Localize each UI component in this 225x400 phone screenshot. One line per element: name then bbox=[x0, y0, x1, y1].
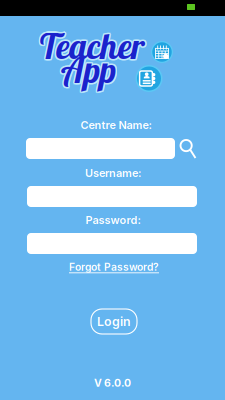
staticText: Teacher bbox=[38, 26, 144, 69]
button[interactable]: Forgot Password? bbox=[66, 258, 162, 276]
staticText: Password: bbox=[85, 213, 140, 227]
staticText: App bbox=[61, 48, 114, 92]
staticText: Teacher bbox=[38, 24, 144, 68]
staticText: Centre Name: bbox=[80, 118, 151, 132]
button[interactable]: Login bbox=[91, 309, 137, 334]
staticText: Teacher bbox=[39, 25, 145, 69]
staticText: Username: bbox=[85, 166, 141, 180]
staticText: Teacher bbox=[37, 23, 143, 66]
staticText: Teacher bbox=[36, 24, 142, 68]
staticText: Teacher bbox=[40, 24, 146, 68]
staticText: App bbox=[62, 50, 115, 93]
staticText: App bbox=[61, 49, 114, 93]
staticText: App bbox=[62, 48, 115, 92]
staticText: App bbox=[62, 47, 115, 90]
staticText: Login bbox=[97, 314, 131, 329]
staticText: V 6.0.0 bbox=[94, 377, 131, 389]
staticText: App bbox=[64, 49, 117, 93]
staticText: App bbox=[61, 47, 114, 90]
staticText: App bbox=[64, 48, 117, 92]
staticText: Teacher bbox=[38, 23, 144, 66]
staticText: Forgot Password? bbox=[69, 261, 159, 273]
staticText: Teacher bbox=[39, 23, 145, 66]
staticText: Teacher bbox=[37, 25, 143, 69]
button[interactable]: Search centre bbox=[177, 137, 198, 160]
staticText: App bbox=[64, 47, 117, 90]
